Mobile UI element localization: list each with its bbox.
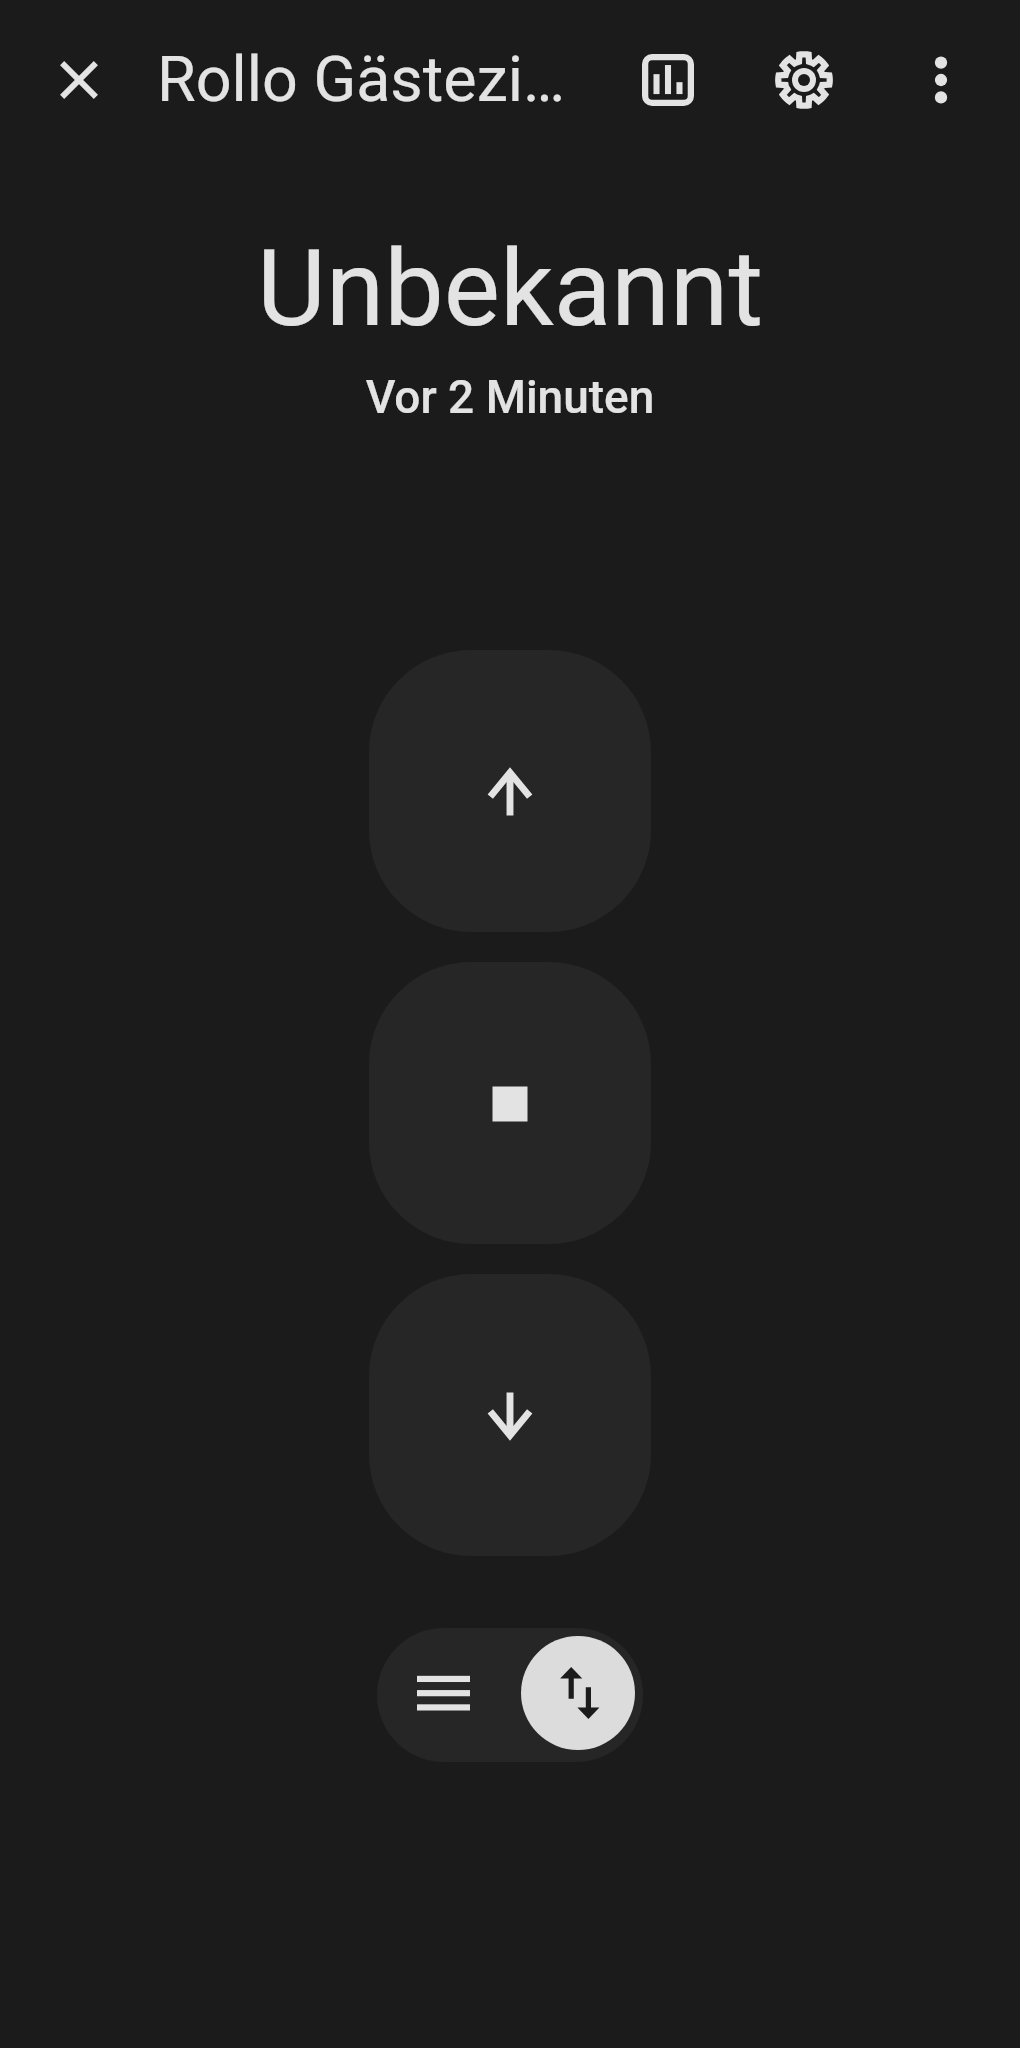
button[interactable]: Cover position bbox=[521, 1636, 635, 1750]
staticText: Vor 2 Minuten bbox=[0, 370, 1020, 424]
button[interactable]: More options bbox=[893, 32, 989, 128]
staticText: Unbekannt bbox=[0, 227, 1020, 351]
button[interactable]: Settings bbox=[756, 32, 852, 128]
button[interactable]: Close bbox=[31, 32, 127, 128]
button[interactable]: Tilt position bbox=[377, 1628, 513, 1760]
staticText: Rollo Gästezi… bbox=[157, 43, 566, 117]
button[interactable]: Close cover bbox=[369, 1274, 651, 1556]
button[interactable]: Stop cover bbox=[369, 962, 651, 1244]
button[interactable]: Open cover bbox=[369, 650, 651, 932]
button[interactable]: History bbox=[620, 32, 716, 128]
